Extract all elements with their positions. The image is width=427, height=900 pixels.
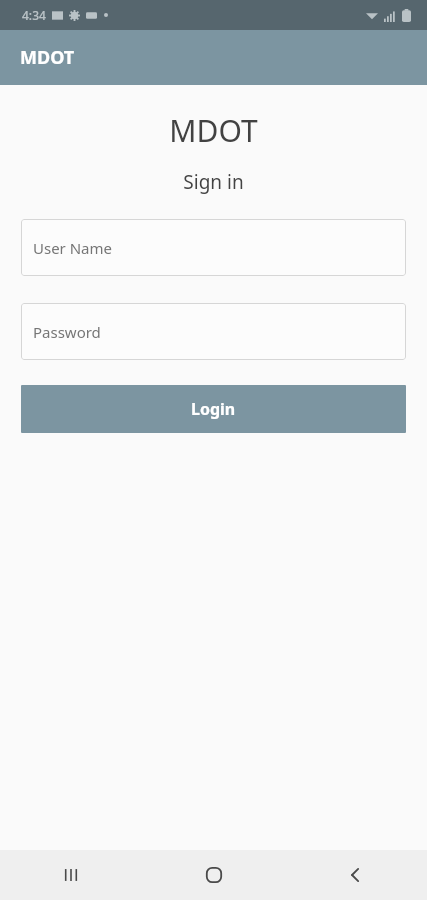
button[interactable]: User Name [21, 219, 406, 276]
staticText: MDOT [20, 45, 75, 70]
button[interactable]: Login [21, 385, 406, 433]
button[interactable]: Password [21, 303, 406, 360]
button[interactable]: Recent apps [43, 850, 99, 900]
staticText: Password [33, 322, 101, 342]
staticText: User Name [33, 238, 113, 258]
staticText: MDOT [0, 110, 427, 151]
button[interactable]: Back [328, 850, 384, 900]
staticText: Sign in [0, 169, 427, 195]
staticText: 4:34 [22, 7, 46, 23]
button[interactable]: Home [186, 850, 242, 900]
staticText: Login [191, 398, 236, 420]
